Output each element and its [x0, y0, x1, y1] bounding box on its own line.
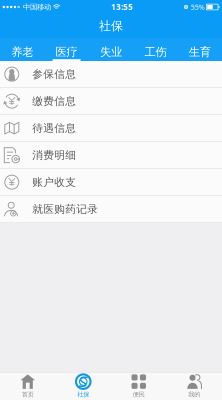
button[interactable]: 参保信息 [0, 61, 222, 88]
staticText: 失业 [100, 45, 122, 59]
button[interactable]: 缴费信息 [0, 88, 222, 115]
staticText: 55% [191, 2, 205, 12]
button[interactable]: 我的 [166, 373, 222, 400]
staticText: 就医购药记录 [32, 202, 98, 216]
staticText: 工伤 [144, 45, 166, 59]
button[interactable]: 就医购药记录 [0, 196, 222, 223]
staticText: 养老 [11, 45, 33, 59]
button[interactable]: 社保 [55, 373, 111, 400]
staticText: 社保 [77, 390, 89, 398]
staticText: 首页 [22, 390, 34, 398]
staticText: 医疗 [56, 45, 78, 59]
staticText: 账户收支 [32, 175, 76, 189]
button[interactable]: 养老 [0, 38, 44, 61]
button[interactable]: 便民 [111, 373, 166, 400]
button[interactable]: 首页 [0, 373, 55, 400]
staticText: 我的 [188, 390, 200, 398]
button[interactable]: 工伤 [133, 38, 178, 61]
button[interactable]: 失业 [89, 38, 133, 61]
staticText: 社保 [99, 18, 123, 33]
staticText: 缴费信息 [32, 94, 76, 108]
button[interactable]: 消费明细 [0, 142, 222, 169]
staticText: 消费明细 [32, 148, 76, 162]
staticText: 13:55 [111, 2, 133, 12]
staticText: 中国移动 [23, 2, 51, 12]
staticText: 参保信息 [32, 67, 76, 81]
staticText: 便民 [133, 390, 145, 398]
button[interactable]: 生育 [178, 38, 222, 61]
staticText: 待遇信息 [32, 121, 76, 135]
staticText: 生育 [189, 45, 211, 59]
button[interactable]: 医疗 [44, 38, 89, 61]
button[interactable]: 账户收支 [0, 169, 222, 196]
button[interactable]: 待遇信息 [0, 115, 222, 142]
